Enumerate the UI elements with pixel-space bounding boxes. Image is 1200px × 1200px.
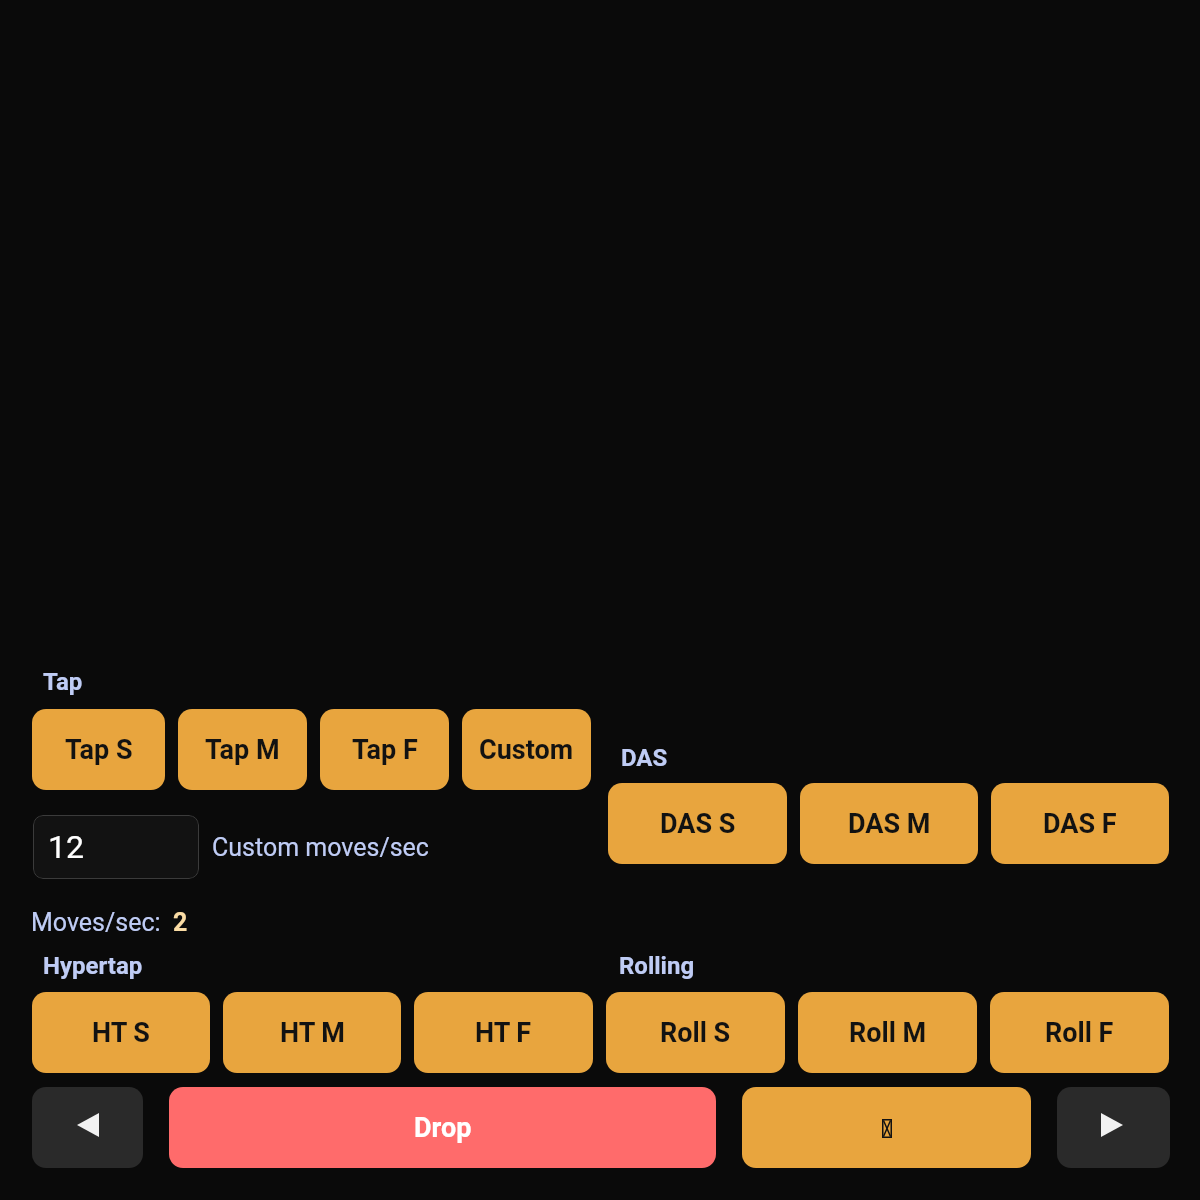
button[interactable]: Tap F: [320, 709, 449, 790]
button[interactable]: Roll S: [606, 992, 785, 1073]
staticText: DAS S: [660, 808, 736, 840]
staticText: HT M: [280, 1017, 345, 1049]
staticText: Drop: [414, 1112, 472, 1144]
staticText: 12: [48, 828, 84, 866]
staticText: Tap F: [352, 734, 418, 766]
button[interactable]: DAS M: [800, 783, 978, 864]
staticText: Tap: [43, 668, 83, 696]
button[interactable]: Tap S: [32, 709, 165, 790]
button[interactable]: HT S: [32, 992, 210, 1073]
button[interactable]: DAS S: [608, 783, 787, 864]
button[interactable]: Drop: [169, 1087, 716, 1168]
staticText: Custom: [479, 734, 574, 766]
button[interactable]: Move right: [1057, 1087, 1170, 1168]
staticText: Tap M: [205, 734, 280, 766]
staticText: Rolling: [619, 952, 695, 980]
staticText: Moves/sec:: [31, 908, 161, 937]
staticText: Roll S: [660, 1017, 731, 1049]
staticText: Roll F: [1045, 1017, 1114, 1049]
button[interactable]: 12: [33, 815, 199, 879]
staticText: Roll M: [849, 1017, 927, 1049]
staticText: DAS: [621, 744, 668, 772]
staticText: DAS F: [1043, 808, 1117, 840]
button[interactable]: Roll F: [990, 992, 1169, 1073]
button[interactable]: HT M: [223, 992, 401, 1073]
button[interactable]: Rotate: [742, 1087, 1031, 1168]
staticText: HT F: [475, 1017, 532, 1049]
staticText: Tap S: [65, 734, 133, 766]
button[interactable]: Move left: [32, 1087, 143, 1168]
staticText: HT S: [92, 1017, 150, 1049]
staticText: Custom moves/sec: [212, 833, 429, 862]
staticText: Hypertap: [43, 952, 143, 980]
button[interactable]: Tap M: [178, 709, 307, 790]
button[interactable]: DAS F: [991, 783, 1169, 864]
button[interactable]: Roll M: [798, 992, 977, 1073]
button[interactable]: Custom: [462, 709, 591, 790]
staticText: 2: [173, 908, 188, 937]
button[interactable]: HT F: [414, 992, 593, 1073]
staticText: DAS M: [848, 808, 931, 840]
